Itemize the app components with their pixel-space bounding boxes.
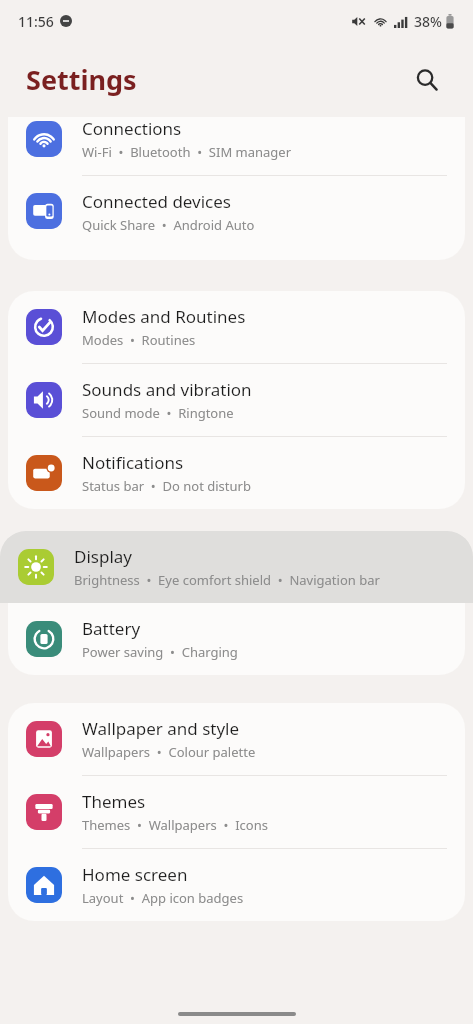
staticText: Settings xyxy=(26,61,137,98)
button[interactable]: Home screen xyxy=(8,849,465,921)
staticText: Power saving • Charging xyxy=(82,643,238,661)
staticText: Battery xyxy=(82,617,141,640)
staticText: Connected devices xyxy=(82,190,232,213)
staticText: Modes • Routines xyxy=(82,331,196,349)
button[interactable]: Wallpaper and style xyxy=(8,703,465,775)
staticText: Wallpaper and style xyxy=(82,717,240,740)
staticText: Display xyxy=(74,545,132,568)
staticText: Notifications xyxy=(82,451,184,474)
staticText: Themes • Wallpapers • Icons xyxy=(82,816,268,834)
button[interactable]: Notifications xyxy=(8,437,465,509)
button[interactable]: Display xyxy=(0,531,473,603)
staticText: Themes xyxy=(82,790,146,813)
staticText: 11:56 xyxy=(18,12,54,31)
staticText: Wi-Fi • Bluetooth • SIM manager xyxy=(82,143,292,161)
staticText: Connections xyxy=(82,117,182,140)
staticText: Sounds and vibration xyxy=(82,378,252,401)
button[interactable]: Sounds and vibration xyxy=(8,364,465,436)
button[interactable]: Battery xyxy=(8,603,465,675)
button[interactable]: Themes xyxy=(8,776,465,848)
staticText: Layout • App icon badges xyxy=(82,889,244,907)
staticText: Brightness • Eye comfort shield • Naviga… xyxy=(74,571,380,589)
button[interactable]: Connected devices xyxy=(8,176,465,246)
button[interactable]: Modes and Routines xyxy=(8,291,465,363)
staticText: Status bar • Do not disturb xyxy=(82,477,251,495)
staticText: Home screen xyxy=(82,863,188,886)
staticText: Sound mode • Ringtone xyxy=(82,404,234,422)
staticText: Modes and Routines xyxy=(82,305,246,328)
staticText: Wallpapers • Colour palette xyxy=(82,743,256,761)
button[interactable]: Search xyxy=(407,60,447,100)
staticText: 38% xyxy=(414,12,442,31)
button[interactable]: Connections xyxy=(8,117,465,175)
staticText: Quick Share • Android Auto xyxy=(82,216,255,232)
